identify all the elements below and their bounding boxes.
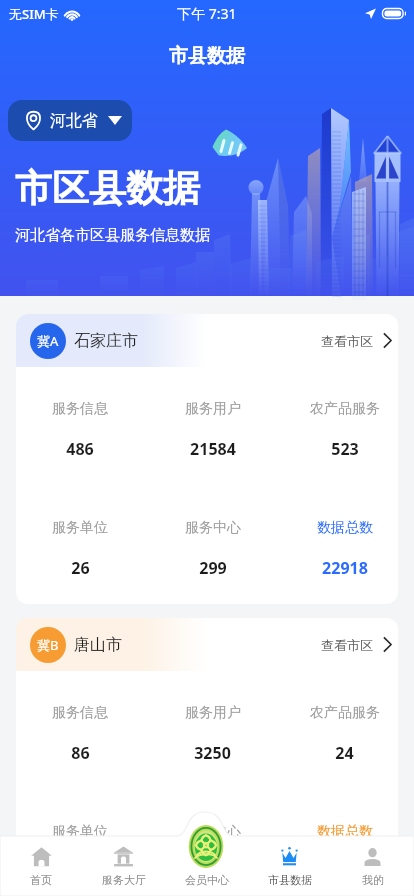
button[interactable]: Profile: [331, 836, 414, 896]
button[interactable]: Home: [0, 836, 82, 896]
staticText: 冀A: [37, 332, 59, 350]
staticText: 首页: [30, 873, 52, 887]
staticText: 3250: [194, 742, 231, 764]
staticText: 冀B: [37, 636, 59, 654]
staticText: 唐山市: [74, 635, 122, 655]
staticText: 服务中心: [185, 823, 241, 841]
staticText: 农产品服务: [310, 704, 380, 722]
button[interactable]: Service hall: [82, 836, 165, 896]
staticText: 299: [199, 557, 227, 579]
staticText: 服务信息: [52, 400, 108, 418]
staticText: 服务单位: [52, 519, 108, 537]
staticText: 市县数据: [169, 44, 245, 68]
button[interactable]: 冀A: [16, 314, 398, 367]
staticText: 服务用户: [185, 704, 241, 722]
staticText: 下午 7:31: [177, 4, 237, 23]
staticText: 523: [331, 438, 359, 460]
other: Home: [31, 846, 52, 867]
staticText: 21584: [190, 438, 236, 460]
other: Member centre: [196, 846, 217, 867]
staticText: 农产品服务: [310, 400, 380, 418]
staticText: 我的: [362, 873, 384, 887]
button[interactable]: City data: [248, 836, 331, 896]
staticText: 服务单位: [52, 823, 108, 841]
staticText: 石家庄市: [74, 331, 138, 351]
other: Profile: [362, 846, 383, 867]
button[interactable]: Member centre: [165, 836, 248, 896]
staticText: 无SIM卡: [9, 5, 59, 23]
staticText: 查看市区: [321, 637, 373, 653]
staticText: 22918: [322, 557, 368, 579]
staticText: 服务中心: [185, 519, 241, 537]
staticText: 服务用户: [185, 400, 241, 418]
other: City data: [279, 846, 300, 867]
staticText: 486: [66, 438, 94, 460]
staticText: 市区县数据: [15, 165, 200, 212]
staticText: 会员中心: [185, 873, 229, 887]
staticText: 24: [335, 742, 354, 764]
staticText: 服务大厅: [102, 873, 146, 887]
staticText: 26: [71, 557, 90, 579]
staticText: 河北省各市区县服务信息数据: [15, 226, 210, 245]
button[interactable]: 冀B: [16, 618, 398, 671]
other: Member centre: [188, 825, 224, 868]
staticText: 查看市区: [321, 333, 373, 349]
staticText: 86: [71, 742, 90, 764]
staticText: 数据总数: [317, 519, 373, 537]
staticText: 河北省: [50, 111, 98, 131]
staticText: 市县数据: [268, 873, 312, 887]
button[interactable]: 河北省: [8, 100, 132, 141]
staticText: 服务信息: [52, 704, 108, 722]
other: Service hall: [113, 846, 134, 867]
staticText: 数据总数: [317, 823, 373, 841]
